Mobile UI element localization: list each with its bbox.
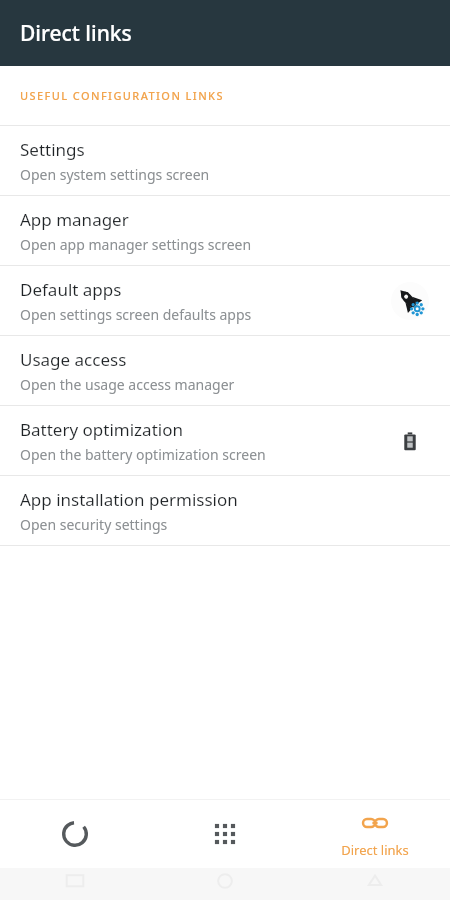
staticText: Open settings screen defaults apps	[20, 305, 252, 324]
staticText: Open system settings screen	[20, 165, 210, 184]
staticText: Usage access	[20, 348, 127, 371]
button[interactable]: App manager	[0, 196, 450, 265]
staticText: Open the usage access manager	[20, 375, 235, 394]
staticText: Settings	[20, 138, 85, 161]
button[interactable]: Refresh	[0, 800, 150, 868]
staticText: Open app manager settings screen	[20, 235, 252, 254]
staticText: App manager	[20, 208, 129, 231]
staticText: Default apps	[20, 278, 122, 301]
staticText: USEFUL CONFIGURATION LINKS	[20, 88, 224, 103]
button[interactable]: Settings	[0, 126, 450, 195]
button[interactable]: Default apps	[0, 266, 450, 335]
staticText: Open the battery optimization screen	[20, 445, 266, 464]
button[interactable]: Direct links	[300, 800, 450, 868]
staticText: Direct links	[20, 19, 132, 48]
button[interactable]: App installation permission	[0, 476, 450, 545]
button[interactable]: Battery optimization	[0, 406, 450, 475]
button[interactable]: Apps grid	[150, 800, 300, 868]
staticText: Battery optimization	[20, 418, 183, 441]
button[interactable]: Usage access	[0, 336, 450, 405]
staticText: Open security settings	[20, 515, 168, 534]
staticText: App installation permission	[20, 488, 238, 511]
staticText: Direct links	[341, 841, 409, 859]
